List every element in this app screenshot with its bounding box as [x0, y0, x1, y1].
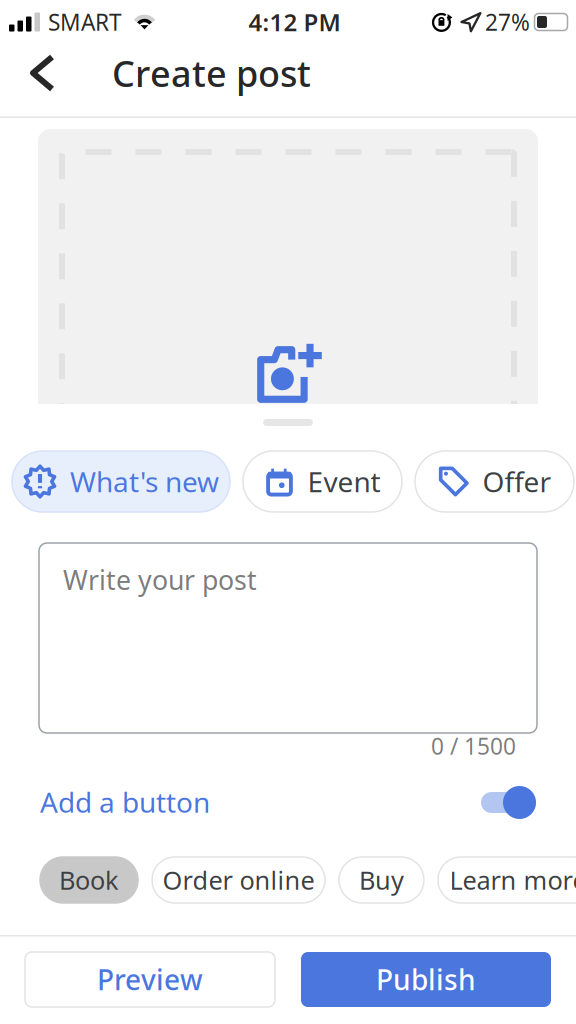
- button[interactable]: Write your post: [39, 543, 537, 733]
- button[interactable]: Event: [243, 451, 402, 512]
- staticText: Book: [59, 863, 119, 897]
- staticText: Publish: [376, 961, 476, 998]
- staticText: 4:12 PM: [248, 6, 340, 38]
- staticText: 0 / 1500: [431, 731, 516, 761]
- button[interactable]: Book: [40, 857, 138, 903]
- staticText: Event: [307, 463, 380, 500]
- button[interactable]: Add photo: [38, 129, 538, 615]
- staticText: What's new: [70, 463, 219, 500]
- button[interactable]: What's new: [12, 451, 230, 512]
- staticText: Create post: [112, 49, 311, 97]
- staticText: Preview: [97, 961, 203, 998]
- button[interactable]: Publish: [301, 952, 551, 1007]
- staticText: 27%: [485, 7, 530, 37]
- staticText: Offer: [482, 463, 551, 500]
- button[interactable]: Learn more: [438, 857, 576, 903]
- staticText: Add a button: [40, 783, 210, 821]
- staticText: Write your post: [63, 562, 257, 597]
- button[interactable]: Offer: [415, 451, 574, 512]
- staticText: Learn more: [449, 863, 576, 897]
- button[interactable]: Order online: [152, 857, 325, 903]
- button[interactable]: Back: [14, 43, 74, 103]
- staticText: Order online: [162, 863, 314, 897]
- staticText: Buy: [359, 863, 404, 897]
- button[interactable]: Buy: [339, 857, 424, 903]
- button[interactable]: Add a button toggle: [481, 786, 536, 819]
- button[interactable]: Add a button: [40, 782, 210, 822]
- button[interactable]: Preview: [25, 952, 275, 1007]
- staticText: SMART: [48, 7, 122, 37]
